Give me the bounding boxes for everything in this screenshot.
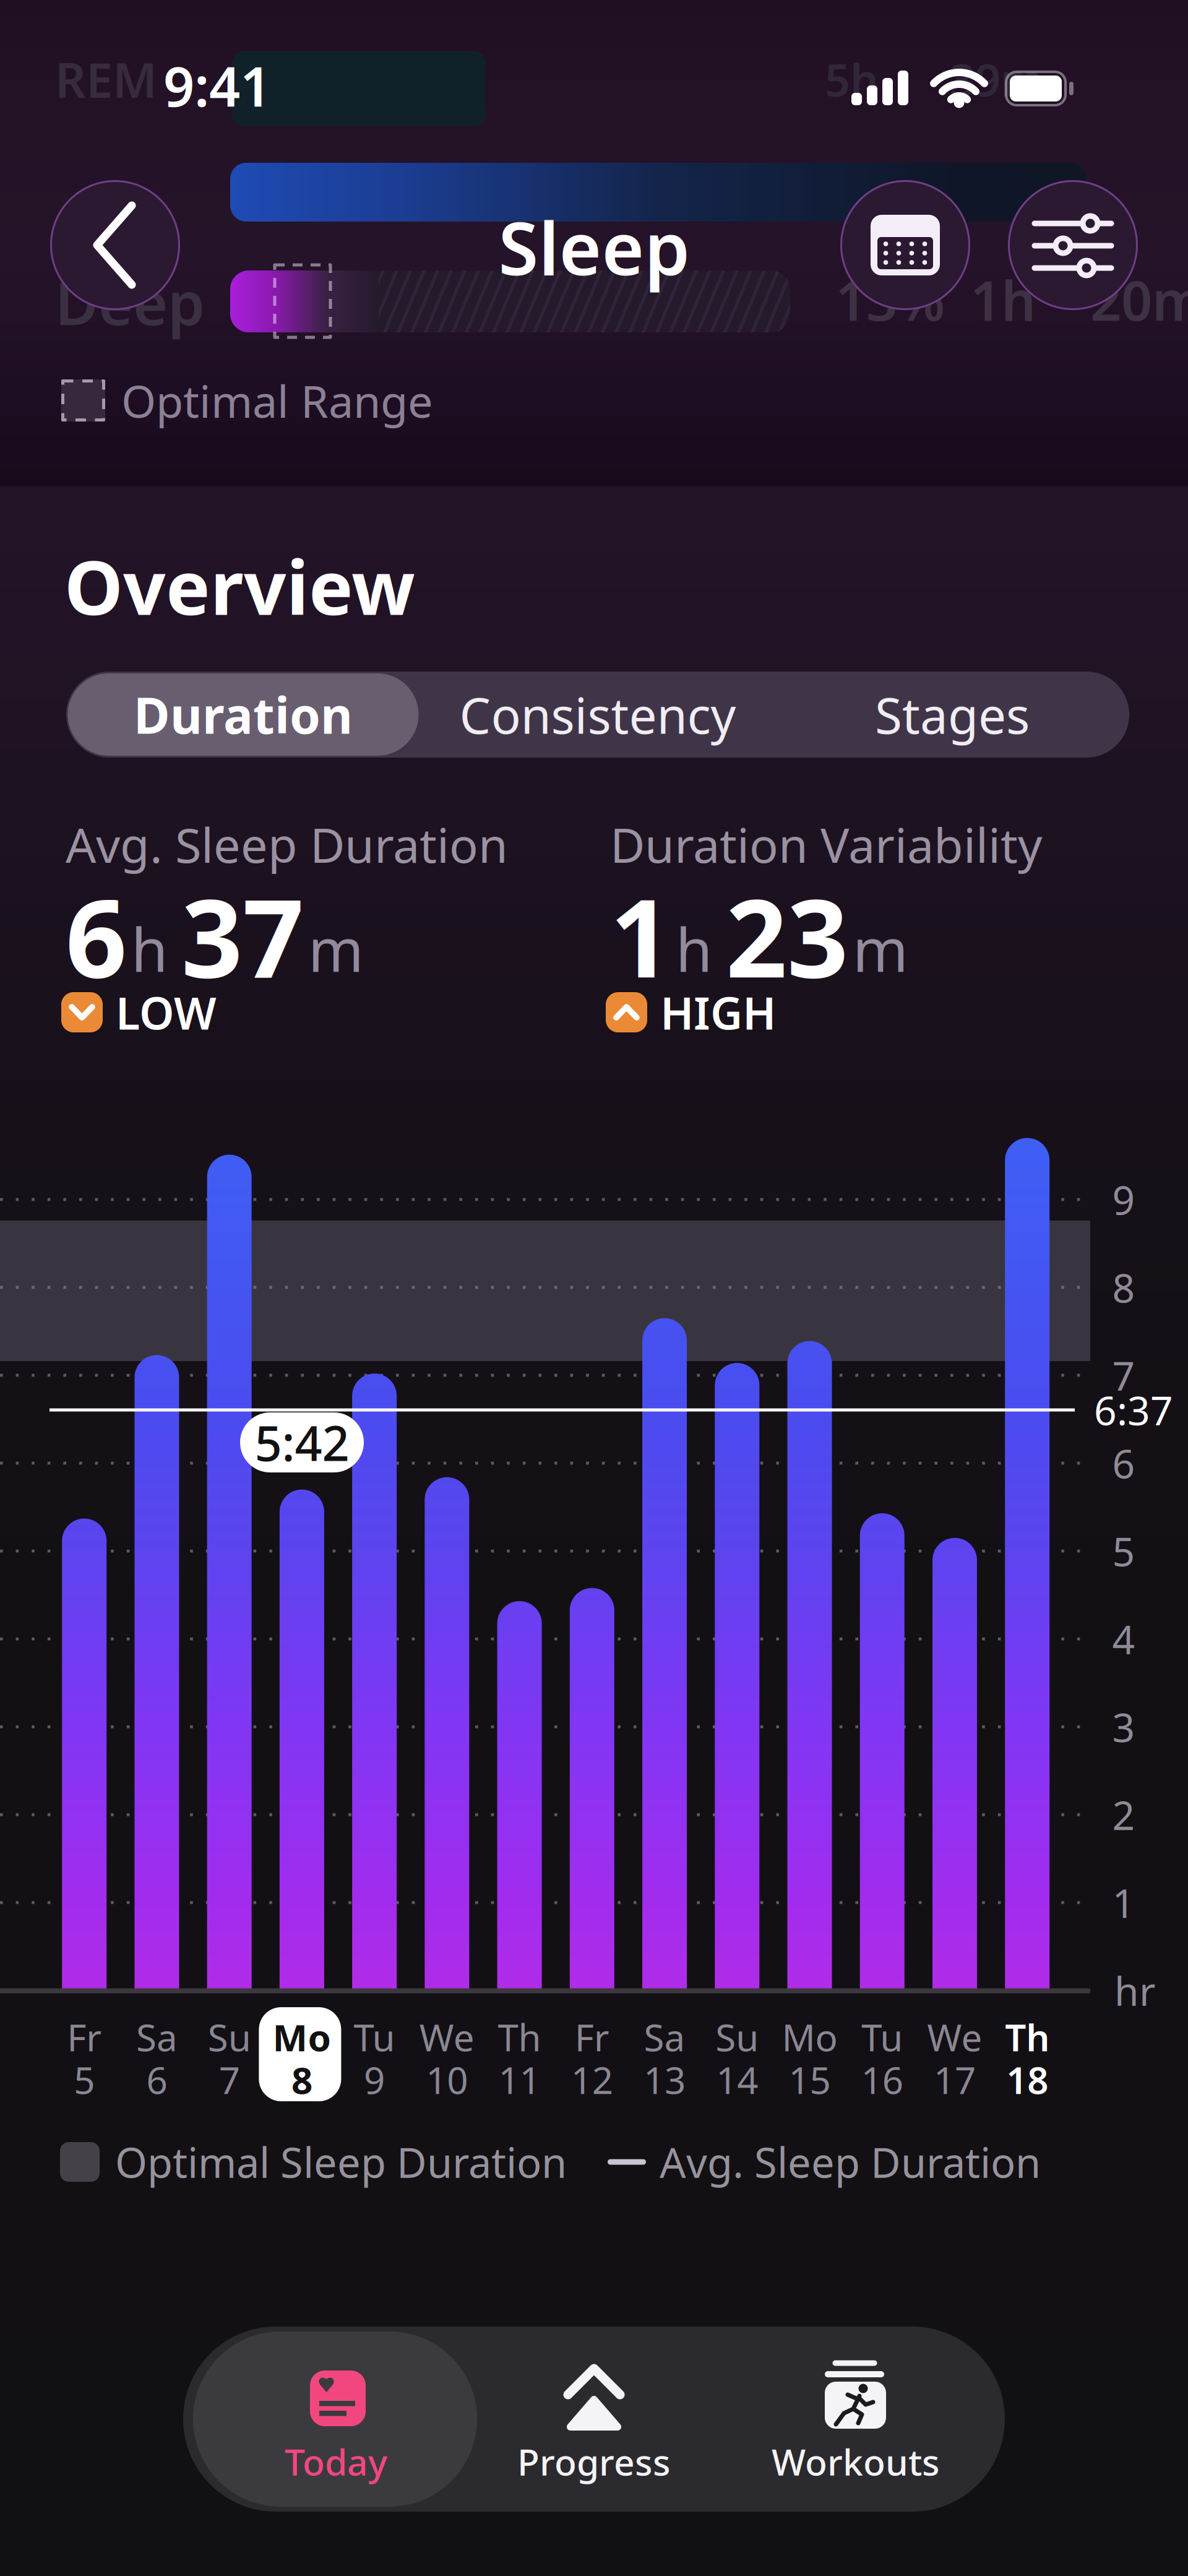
staticText: 23 — [726, 865, 848, 1007]
staticText: We — [419, 2012, 474, 2062]
button[interactable]: Today — [193, 2332, 477, 2507]
staticText: 9:41 — [163, 49, 271, 122]
staticText: Duration — [134, 682, 353, 747]
button[interactable]: Consistency — [422, 673, 773, 756]
staticText: 18 — [1006, 2055, 1048, 2104]
staticText: 20m — [1090, 263, 1188, 336]
staticText: 15 — [789, 2055, 831, 2104]
staticText: 7 — [1112, 1349, 1135, 1402]
staticText: 6:37 — [1094, 1384, 1173, 1436]
staticText: 8 — [291, 2055, 312, 2104]
staticText: 2 — [1112, 1788, 1135, 1841]
staticText: 9 — [364, 2055, 385, 2104]
button[interactable]: Duration — [68, 673, 419, 756]
staticText: Sa — [136, 2012, 178, 2062]
staticText: 14 — [716, 2055, 758, 2104]
staticText: 5 — [74, 2055, 95, 2104]
staticText: Mo — [272, 2012, 331, 2062]
staticText: Deep — [55, 263, 205, 342]
staticText: Overview — [64, 537, 415, 635]
staticText: 39m — [950, 50, 1043, 109]
staticText: 3 — [1112, 1701, 1135, 1753]
staticText: h — [676, 909, 712, 988]
staticText: 7 — [219, 2055, 240, 2104]
staticText: hr — [1114, 1964, 1155, 2017]
button[interactable]: Progress — [464, 2327, 724, 2512]
staticText: 5h — [825, 50, 879, 109]
staticText: Optimal Range — [121, 371, 433, 430]
staticText: Today — [285, 2437, 387, 2486]
staticText: m — [308, 909, 364, 988]
staticText: 17 — [934, 2055, 976, 2104]
staticText: m — [853, 909, 908, 988]
staticText: 4 — [1112, 1613, 1135, 1665]
staticText: 12 — [571, 2055, 613, 2104]
staticText: 10 — [426, 2055, 468, 2104]
staticText: HIGH — [660, 983, 776, 1042]
staticText: 9 — [1112, 1173, 1135, 1226]
staticText: Avg. Sleep Duration — [66, 812, 508, 876]
staticText: Tu — [861, 2012, 903, 2062]
staticText: Sa — [644, 2012, 685, 2062]
staticText: Avg. Sleep Duration — [660, 2135, 1041, 2189]
staticText: 16 — [861, 2055, 903, 2104]
staticText: Duration Variability — [610, 812, 1042, 876]
staticText: 1 — [610, 865, 671, 1007]
staticText: 5:42 — [255, 1411, 349, 1474]
staticText: 8 — [1112, 1261, 1135, 1314]
button[interactable]: Stages — [777, 673, 1128, 756]
staticText: 6 — [1112, 1437, 1135, 1489]
staticText: Fr — [575, 2012, 609, 2062]
button[interactable] — [50, 180, 180, 310]
staticText: 13 — [643, 2055, 686, 2104]
staticText: 37 — [181, 865, 304, 1007]
staticText: Su — [208, 2012, 251, 2062]
staticText: Progress — [517, 2437, 671, 2486]
button[interactable] — [840, 180, 970, 310]
staticText: REM — [55, 47, 157, 111]
staticText: Su — [715, 2012, 759, 2062]
staticText: Th — [498, 2012, 541, 2062]
staticText: We — [927, 2012, 982, 2062]
staticText: 11 — [498, 2055, 541, 2104]
staticText: Tu — [354, 2012, 395, 2062]
staticText: 5 — [1112, 1525, 1135, 1577]
button[interactable] — [1008, 180, 1138, 310]
button[interactable]: Workouts — [726, 2327, 986, 2512]
staticText: Sleep — [498, 199, 690, 295]
staticText: Stages — [875, 682, 1030, 747]
staticText: 6 — [146, 2055, 167, 2104]
staticText: Consistency — [459, 682, 736, 747]
staticText: Mo — [782, 2012, 837, 2062]
staticText: Th — [1005, 2012, 1050, 2062]
staticText: Optimal Sleep Duration — [115, 2135, 567, 2189]
staticText: LOW — [116, 983, 217, 1042]
staticText: 6 — [66, 865, 127, 1007]
staticText: Workouts — [772, 2437, 940, 2486]
staticText: 1 — [1112, 1876, 1135, 1929]
staticText: Fr — [67, 2012, 102, 2062]
staticText: 13% — [835, 263, 945, 336]
staticText: h — [131, 909, 168, 988]
staticText: 1h — [970, 263, 1036, 336]
